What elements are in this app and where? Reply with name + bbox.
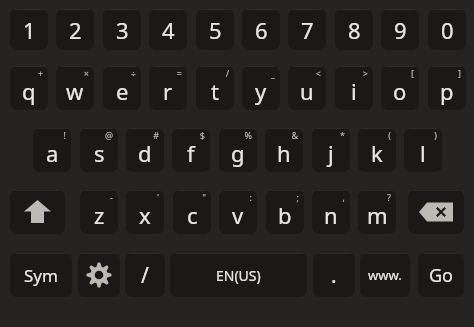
staticText: n [324, 200, 338, 230]
staticText: & [291, 129, 298, 141]
button[interactable]: 4 [149, 9, 187, 50]
staticText: . [331, 261, 337, 290]
staticText: + [37, 67, 43, 79]
staticText: 3 [116, 15, 129, 45]
staticText: _ [271, 67, 275, 79]
button[interactable]: , [312, 190, 350, 234]
button[interactable]: ; [266, 190, 304, 234]
staticText: 1 [23, 15, 36, 45]
staticText: p [440, 76, 454, 106]
button[interactable]: 0 [428, 9, 466, 50]
button[interactable]: Sym [10, 253, 72, 297]
staticText: w [66, 76, 84, 106]
staticText: 6 [255, 15, 268, 45]
button[interactable]: # [126, 128, 164, 172]
staticText: s [94, 138, 105, 168]
button[interactable]: ) [404, 128, 442, 172]
button[interactable]: 7 [288, 9, 326, 50]
button[interactable]: = [149, 66, 187, 110]
button[interactable]: + [10, 66, 48, 110]
staticText: x [139, 200, 151, 230]
button[interactable]: < [288, 66, 326, 110]
button[interactable]: % [219, 128, 257, 172]
staticText: 0 [441, 15, 454, 45]
button[interactable]: . [313, 253, 355, 297]
staticText: d [138, 138, 152, 168]
button[interactable]: $ [172, 128, 210, 172]
staticText: ; [296, 191, 299, 203]
staticText: e [116, 76, 129, 106]
staticText: = [176, 67, 182, 79]
button[interactable]: ÷ [103, 66, 141, 110]
button[interactable]: × [56, 66, 94, 110]
button[interactable]: Shift [10, 190, 65, 234]
button[interactable]: Backspace [408, 190, 464, 234]
staticText: ÷ [130, 67, 136, 79]
button[interactable]: / [125, 253, 165, 297]
staticText: × [83, 67, 89, 79]
staticText: / [141, 261, 149, 290]
button[interactable]: ] [428, 66, 466, 110]
staticText: Go [429, 263, 453, 288]
button[interactable]: > [335, 66, 373, 110]
staticText: k [371, 138, 383, 168]
staticText: r [163, 76, 173, 106]
staticText: * [340, 129, 345, 141]
staticText: % [244, 129, 252, 141]
button[interactable]: 5 [196, 9, 234, 50]
staticText: Sym [24, 264, 58, 287]
staticText: b [278, 200, 292, 230]
staticText: y [255, 76, 267, 106]
button[interactable]: Settings [78, 253, 120, 297]
staticText: ] [458, 67, 461, 79]
button[interactable]: www. [360, 253, 410, 297]
button[interactable]: ? [358, 190, 396, 234]
button[interactable]: : [219, 190, 257, 234]
button[interactable]: ' [126, 190, 164, 234]
staticText: 9 [394, 15, 407, 45]
staticText: f [187, 138, 195, 168]
button[interactable]: EN(US) [170, 253, 307, 297]
staticText: i [351, 76, 357, 106]
staticText: [ [411, 67, 414, 79]
staticText: l [420, 138, 426, 168]
staticText: c [187, 200, 198, 230]
staticText: t [211, 76, 219, 106]
button[interactable]: - [80, 190, 118, 234]
staticText: 7 [301, 15, 314, 45]
staticText: > [362, 67, 368, 79]
staticText: g [231, 138, 245, 168]
button[interactable]: 3 [103, 9, 141, 50]
button[interactable]: * [312, 128, 350, 172]
button[interactable]: / [196, 66, 234, 110]
button[interactable]: 2 [56, 9, 94, 50]
staticText: m [367, 200, 388, 230]
staticText: ( [388, 129, 391, 141]
staticText: - [110, 191, 113, 203]
staticText: www. [368, 266, 402, 284]
staticText: z [94, 200, 105, 230]
staticText: o [393, 76, 407, 106]
button[interactable]: Go [418, 253, 464, 297]
staticText: # [153, 129, 159, 141]
staticText: ? [387, 191, 391, 203]
button[interactable]: 9 [381, 9, 419, 50]
button[interactable]: " [173, 190, 211, 234]
button[interactable]: ( [358, 128, 396, 172]
button[interactable]: ! [33, 128, 71, 172]
staticText: u [300, 76, 314, 106]
staticText: ' [156, 191, 159, 203]
button[interactable]: 8 [335, 9, 373, 50]
button[interactable]: [ [381, 66, 419, 110]
button[interactable]: 6 [242, 9, 280, 50]
button[interactable]: _ [242, 66, 280, 110]
staticText: h [277, 138, 291, 168]
staticText: 2 [69, 15, 82, 45]
staticText: $ [199, 129, 205, 141]
staticText: " [202, 191, 206, 203]
staticText: a [46, 138, 59, 168]
button[interactable]: 1 [10, 9, 48, 50]
button[interactable]: @ [80, 128, 118, 172]
button[interactable]: & [265, 128, 303, 172]
staticText: EN(US) [216, 266, 261, 285]
